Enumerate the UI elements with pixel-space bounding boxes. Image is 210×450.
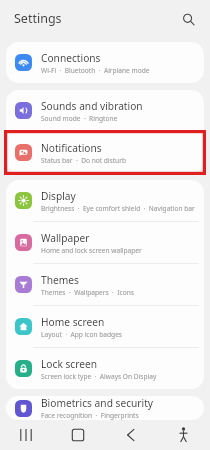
button[interactable]: Sounds and vibration	[6, 90, 204, 131]
button[interactable]: Home screen	[6, 306, 204, 347]
staticText: Wi-Fi · Bluetooth · Airplane mode	[41, 66, 150, 75]
staticText: Screen lock type · Always On Display	[41, 372, 157, 381]
staticText: Layout · App icon badges	[41, 330, 123, 339]
staticText: Themes	[41, 273, 79, 287]
button[interactable]: Accessibility	[157, 420, 210, 450]
staticText: Sound mode · Ringtone	[41, 114, 118, 123]
staticText: Themes · Wallpapers · Icons	[41, 288, 134, 297]
staticText: Biometrics and security	[41, 396, 154, 410]
button[interactable]: Themes	[6, 264, 204, 305]
button[interactable]: Display	[6, 180, 204, 221]
button[interactable]: Connections	[6, 42, 204, 83]
staticText: Settings	[14, 10, 62, 27]
button[interactable]: Search	[175, 6, 201, 32]
staticText: Home screen	[41, 315, 105, 329]
staticText: Wallpaper	[41, 231, 90, 245]
staticText: Status bar · Do not disturb	[41, 156, 126, 165]
staticText: Sounds and vibration	[41, 99, 143, 113]
staticText: Home and lock screen wallpaper	[41, 246, 142, 255]
button[interactable]: Recents	[0, 420, 52, 450]
button[interactable]: Home	[52, 420, 104, 450]
staticText: Notifications	[41, 141, 102, 155]
button[interactable]: Lock screen	[6, 348, 204, 389]
staticText: Connections	[41, 51, 101, 65]
button[interactable]: Back	[104, 420, 157, 450]
staticText: Lock screen	[41, 357, 98, 371]
staticText: Display	[41, 189, 76, 203]
button[interactable]: Biometrics and security	[6, 396, 204, 420]
staticText: Face recognition · Fingerprints	[41, 411, 139, 420]
button[interactable]: Notifications	[6, 132, 204, 173]
button[interactable]: Wallpaper	[6, 222, 204, 263]
staticText: Brightness · Eye comfort shield · Naviga…	[41, 204, 195, 213]
